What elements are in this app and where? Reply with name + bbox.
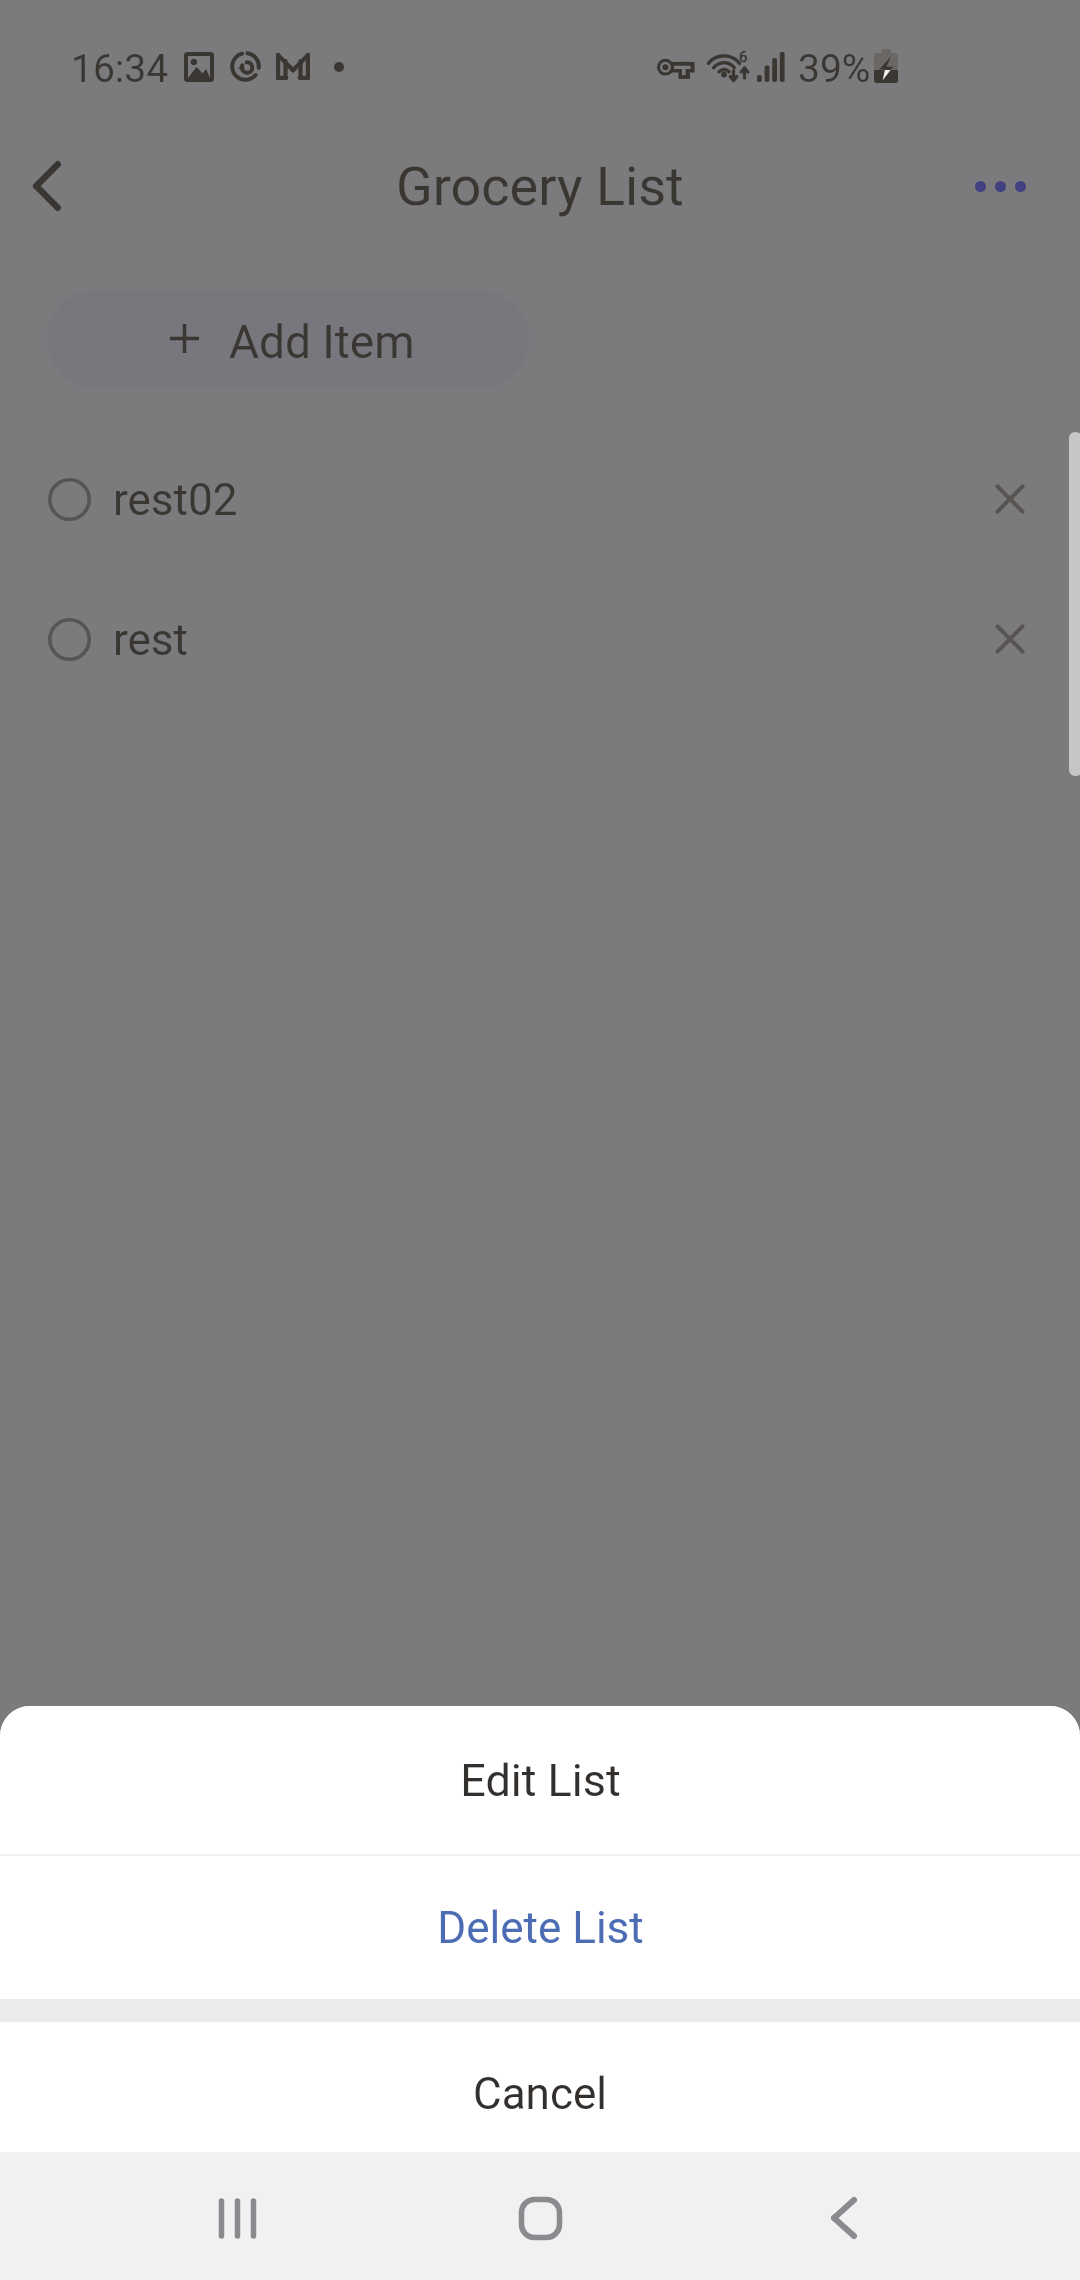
button[interactable]: Edit List	[0, 1706, 1080, 1854]
button[interactable]: Delete List	[0, 1856, 1080, 1999]
button[interactable]: More options	[952, 150, 1048, 222]
staticText: Edit List	[460, 1754, 621, 1807]
staticText: rest	[113, 614, 188, 666]
button[interactable]: rest02	[0, 429, 1080, 569]
button[interactable]: Back	[789, 2163, 899, 2273]
button[interactable]: Cancel	[0, 2022, 1080, 2152]
staticText: Delete List	[437, 1902, 644, 1954]
button[interactable]: Remove rest02	[974, 463, 1046, 535]
staticText: Grocery List	[396, 155, 684, 218]
staticText: Cancel	[473, 2068, 607, 2120]
button[interactable]: rest	[0, 569, 1080, 709]
staticText: 16:34	[71, 46, 169, 92]
staticText: 39%	[798, 46, 871, 92]
button[interactable]: Back	[8, 146, 86, 224]
staticText: rest02	[113, 474, 238, 526]
button[interactable]: Home	[485, 2163, 595, 2273]
staticText: Add Item	[229, 315, 415, 369]
staticText: 6	[739, 48, 748, 66]
button[interactable]: Recent apps	[183, 2163, 293, 2273]
button[interactable]: Add Item	[47, 290, 529, 388]
button[interactable]: Remove rest	[974, 603, 1046, 675]
